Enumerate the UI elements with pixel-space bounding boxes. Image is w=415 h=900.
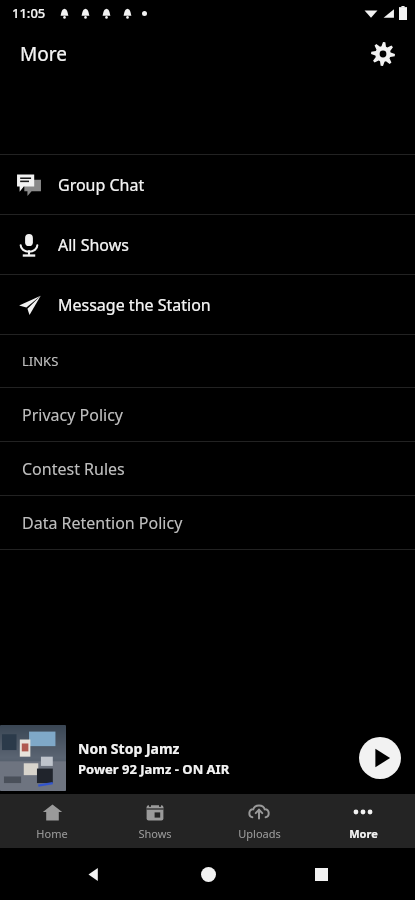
button[interactable]: Recents [301, 854, 341, 894]
staticText: Power 92 Jamz - ON AIR [78, 760, 230, 778]
button[interactable]: Non Stop Jamz [0, 722, 415, 794]
button[interactable]: Message the Station [0, 275, 415, 334]
button[interactable]: Play [359, 737, 401, 779]
button[interactable]: Back [74, 854, 114, 894]
staticText: Group Chat [58, 174, 145, 196]
staticText: Data Retention Policy [22, 512, 183, 534]
staticText: Privacy Policy [22, 404, 123, 426]
staticText: More [349, 826, 378, 841]
button[interactable]: Shows [103, 794, 207, 848]
staticText: Message the Station [58, 294, 211, 316]
staticText: LINKS [22, 352, 59, 370]
staticText: Uploads [238, 826, 281, 841]
button[interactable]: Contest Rules [0, 442, 415, 495]
staticText: Non Stop Jamz [78, 739, 180, 758]
button[interactable]: More [311, 794, 415, 848]
button[interactable]: Home [0, 794, 103, 848]
button[interactable]: All Shows [0, 215, 415, 274]
staticText: Shows [138, 826, 172, 841]
staticText: Home [36, 826, 68, 841]
button[interactable]: Privacy Policy [0, 388, 415, 441]
staticText: More [20, 41, 67, 67]
staticText: All Shows [58, 234, 129, 256]
staticText: Contest Rules [22, 458, 125, 480]
button[interactable]: Home [188, 854, 228, 894]
staticText: 11:05 [12, 4, 46, 22]
button[interactable]: Group Chat [0, 155, 415, 214]
button[interactable]: Data Retention Policy [0, 496, 415, 549]
button[interactable]: Settings [359, 30, 407, 78]
button[interactable]: Uploads [207, 794, 311, 848]
